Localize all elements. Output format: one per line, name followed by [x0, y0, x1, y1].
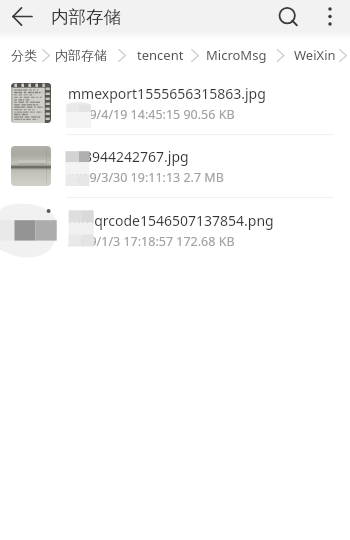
button[interactable]: MicroMsg	[206, 41, 267, 69]
button[interactable]: 内部存储	[55, 42, 107, 68]
button[interactable]: mmqrcode1546507137854.png	[0, 198, 350, 262]
staticText: 内部存储	[55, 47, 107, 63]
button[interactable]: 153944242767.jpg	[0, 134, 350, 198]
button[interactable]: mmexport1555656315863.jpg	[0, 71, 350, 135]
staticText: WeiXin	[294, 46, 336, 64]
staticText: 2019/4/19 14:45:15 90.56 KB	[68, 106, 235, 123]
button[interactable]: Back	[9, 3, 37, 31]
staticText: mmexport1555656315863.jpg	[68, 84, 266, 103]
staticText: 分类	[11, 47, 37, 63]
button[interactable]: WeiXin	[294, 41, 336, 69]
staticText: mmqrcode1546507137854.png	[68, 211, 274, 230]
staticText: 2019/3/30 19:11:13 2.7 MB	[68, 169, 224, 186]
button[interactable]: tencent	[137, 41, 184, 69]
staticText: 2019/1/3 17:18:57 172.68 KB	[68, 233, 235, 250]
staticText: MicroMsg	[206, 46, 267, 64]
button[interactable]: Search	[275, 3, 303, 31]
button[interactable]: 分类	[11, 42, 37, 68]
button[interactable]: More options	[316, 3, 344, 31]
staticText: 内部存储	[51, 6, 121, 28]
staticText: tencent	[137, 46, 184, 64]
staticText: 153944242767.jpg	[68, 147, 189, 166]
